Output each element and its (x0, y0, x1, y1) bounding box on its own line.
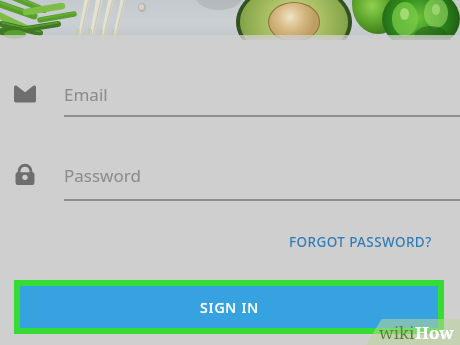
button[interactable]: SIGN IN (20, 286, 438, 328)
staticText: Password (64, 164, 141, 187)
button[interactable]: Password (0, 140, 460, 220)
other: Email (14, 83, 36, 105)
button[interactable]: FORGOT PASSWORD? (285, 229, 436, 255)
staticText: SIGN IN (200, 298, 259, 317)
staticText: Email (64, 83, 108, 106)
staticText: FORGOT PASSWORD? (289, 233, 432, 251)
button[interactable]: Email (0, 60, 460, 140)
staticText: wiki (379, 321, 415, 344)
staticText: How (415, 321, 454, 344)
other: Password (14, 163, 36, 185)
